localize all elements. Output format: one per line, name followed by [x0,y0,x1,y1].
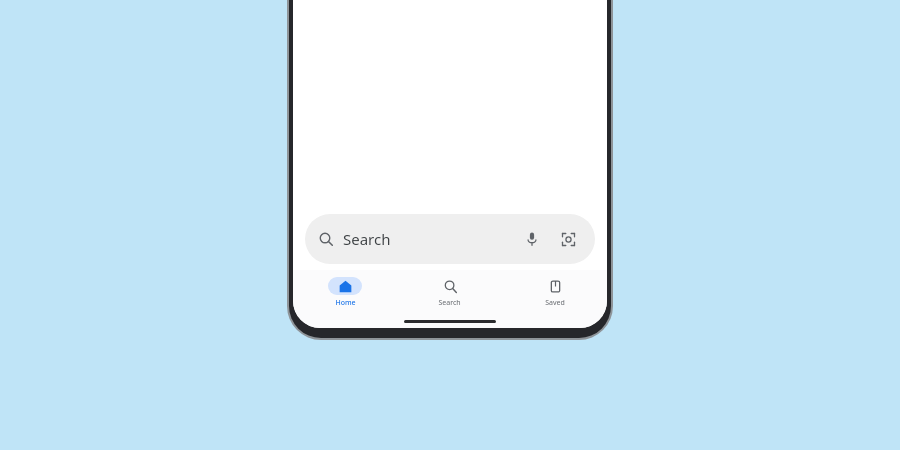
staticText: Search [438,298,461,308]
button[interactable]: Voice search [519,226,545,252]
button[interactable]: Home [293,270,397,314]
button[interactable]: Search [397,270,502,314]
button[interactable]: Google Lens [555,226,581,252]
staticText: Search [343,229,391,249]
button[interactable]: Saved [502,270,607,314]
button[interactable]: Search [305,214,595,264]
staticText: Saved [545,298,565,308]
staticText: Home [335,298,356,308]
